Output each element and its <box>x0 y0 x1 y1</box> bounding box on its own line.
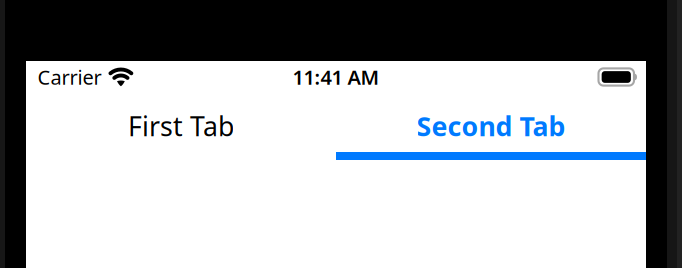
staticText: 11:41 AM <box>292 64 379 90</box>
button[interactable]: Second Tab <box>336 93 646 160</box>
staticText: Carrier <box>37 64 101 90</box>
staticText: First Tab <box>128 108 234 143</box>
button[interactable]: First Tab <box>26 93 336 160</box>
staticText: Second Tab <box>416 108 565 143</box>
